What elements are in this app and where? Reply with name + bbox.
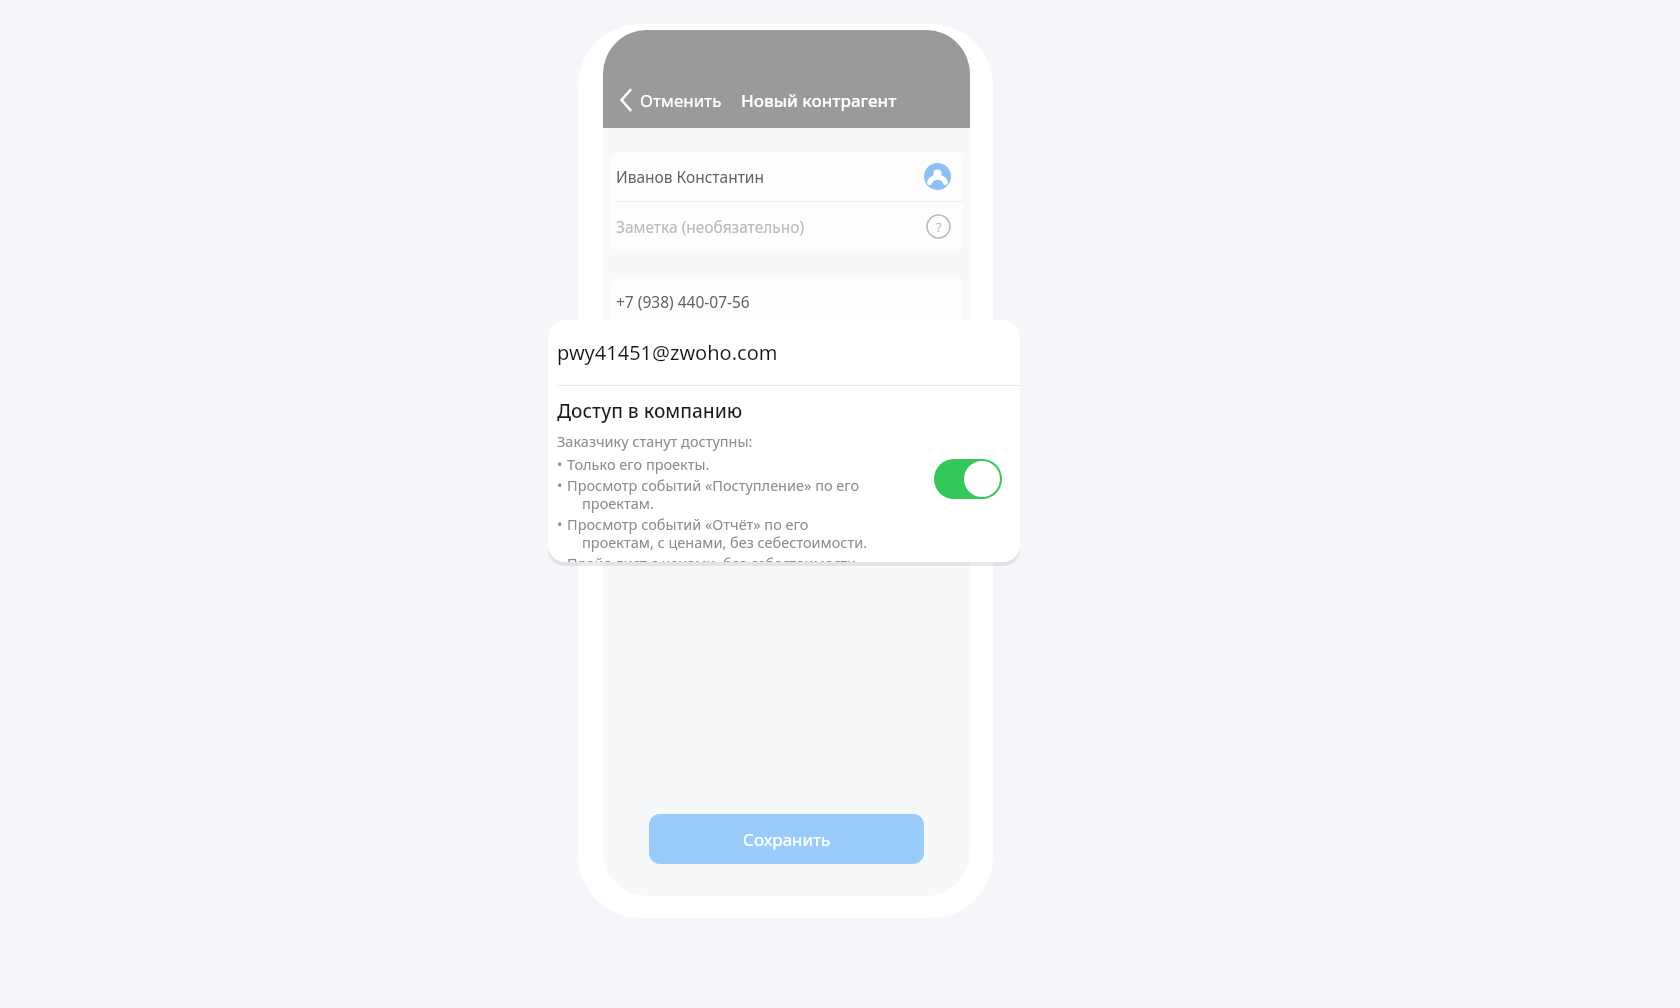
- button[interactable]: Help: [926, 214, 951, 239]
- button[interactable]: Заметка (необязательно): [610, 202, 963, 251]
- staticText: Заказчику станут доступны:: [557, 431, 753, 451]
- staticText: pwy41451@zwoho.com: [557, 339, 778, 366]
- button[interactable]: Отменить: [617, 84, 724, 116]
- staticText: •: [557, 514, 567, 534]
- button[interactable]: +7 (938) 440-07-56: [610, 277, 963, 326]
- staticText: Доступ в компанию: [557, 398, 743, 424]
- button[interactable]: Иванов Константин: [610, 152, 963, 201]
- button[interactable]: Company access toggle, on: [934, 459, 1002, 499]
- staticText: pwy41451@zwoho.com: [616, 341, 787, 362]
- button[interactable]: Доступ в компанию: [610, 377, 963, 426]
- button[interactable]: pwy41451@zwoho.com: [548, 320, 1020, 385]
- staticText: •: [557, 454, 567, 474]
- staticText: Только его проекты.: [567, 454, 710, 474]
- staticText: Просмотр событий «Отчёт» по его проектам…: [567, 514, 868, 552]
- button[interactable]: Сохранить: [649, 814, 924, 864]
- button[interactable]: Заказчик: [610, 427, 963, 476]
- staticText: Прайс-лист с ценами, без себестоимости.: [567, 553, 861, 562]
- staticText: Отменить: [640, 89, 722, 112]
- staticText: Доступ в компанию: [616, 391, 765, 412]
- button[interactable]: Доступ в компанию: [548, 386, 1020, 562]
- staticText: Иванов Константин: [616, 166, 765, 187]
- staticText: Новый контрагент: [741, 89, 897, 112]
- staticText: •: [557, 553, 567, 562]
- button[interactable]: pwy41451@zwoho.com: [610, 327, 963, 376]
- button[interactable]: Choose contact: [924, 163, 951, 190]
- staticText: Заметка (необязательно): [616, 216, 805, 237]
- staticText: Просмотр событий «Поступление» по его пр…: [567, 475, 860, 513]
- staticText: Сохранить: [743, 828, 831, 851]
- staticText: Заказчик: [616, 441, 685, 462]
- staticText: ?: [936, 218, 942, 236]
- staticText: •: [557, 475, 567, 495]
- staticText: +7 (938) 440-07-56: [616, 291, 750, 312]
